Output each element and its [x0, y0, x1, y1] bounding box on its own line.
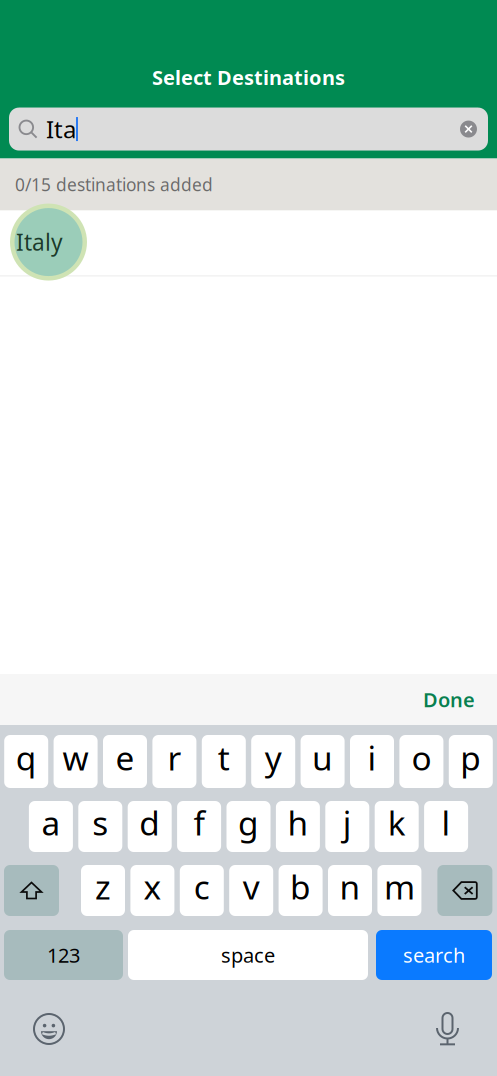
staticText: s — [92, 800, 108, 845]
staticText: f — [194, 800, 205, 845]
staticText: v — [243, 864, 260, 909]
staticText: m — [384, 864, 415, 909]
button[interactable]: c — [180, 865, 224, 916]
staticText: c — [194, 864, 210, 909]
button[interactable]: j — [325, 801, 369, 852]
button[interactable]: space — [128, 930, 368, 980]
button[interactable]: a — [29, 801, 73, 852]
button[interactable]: g — [226, 801, 270, 852]
staticText: search — [403, 942, 465, 968]
staticText: Italy — [16, 227, 63, 257]
staticText: z — [95, 864, 111, 909]
staticText: x — [143, 864, 161, 909]
button[interactable]: s — [78, 801, 122, 852]
button[interactable]: f — [177, 801, 221, 852]
staticText: h — [287, 800, 308, 845]
staticText: d — [139, 800, 160, 845]
button[interactable]: 123 — [4, 930, 123, 980]
button[interactable]: search — [376, 930, 492, 980]
button[interactable]: i — [350, 735, 394, 788]
staticText: j — [343, 800, 352, 845]
staticText: o — [411, 735, 431, 780]
staticText: a — [41, 800, 60, 845]
button[interactable]: Emoji — [34, 1014, 64, 1044]
button[interactable]: d — [128, 801, 172, 852]
staticText: Ita — [46, 113, 76, 145]
staticText: i — [367, 735, 376, 780]
button[interactable]: u — [301, 735, 345, 788]
staticText: y — [265, 735, 282, 780]
staticText: p — [460, 735, 481, 780]
staticText: w — [63, 735, 89, 780]
button[interactable]: y — [251, 735, 295, 788]
button[interactable]: e — [103, 735, 147, 788]
staticText: space — [221, 942, 275, 968]
staticText: r — [167, 735, 181, 780]
staticText: Select Destinations — [152, 64, 345, 91]
button[interactable]: Dictation — [437, 1013, 458, 1045]
button[interactable]: Clear text — [460, 121, 477, 138]
staticText: n — [339, 864, 360, 909]
button[interactable]: l — [424, 801, 468, 852]
staticText: 123 — [47, 942, 80, 968]
button[interactable]: o — [399, 735, 443, 788]
button[interactable]: h — [276, 801, 320, 852]
staticText: u — [312, 735, 333, 780]
button[interactable]: v — [229, 865, 273, 916]
staticText: e — [115, 735, 134, 780]
button[interactable]: z — [81, 865, 125, 916]
staticText: k — [388, 800, 406, 845]
staticText: Done — [423, 686, 475, 713]
button[interactable]: b — [279, 865, 323, 916]
staticText: b — [290, 864, 311, 909]
button[interactable]: Italy — [0, 204, 497, 281]
button[interactable]: p — [449, 735, 493, 788]
button[interactable]: k — [375, 801, 419, 852]
button[interactable]: m — [377, 865, 421, 916]
staticText: t — [218, 735, 230, 780]
button[interactable]: t — [202, 735, 246, 788]
button[interactable]: q — [4, 735, 48, 788]
button[interactable]: x — [130, 865, 174, 916]
button[interactable]: Shift — [4, 865, 59, 916]
staticText: 0/15 destinations added — [15, 173, 213, 196]
button[interactable]: r — [152, 735, 196, 788]
button[interactable]: w — [54, 735, 98, 788]
button[interactable]: Done — [415, 680, 483, 719]
button[interactable]: Delete — [437, 865, 492, 916]
staticText: q — [16, 735, 37, 780]
staticText: g — [238, 800, 259, 845]
button[interactable]: n — [328, 865, 372, 916]
staticText: l — [442, 800, 451, 845]
